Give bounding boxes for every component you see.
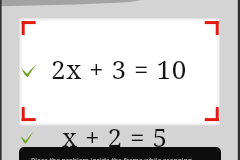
staticText: Place the problem inside the frame while… [31,156,192,160]
button[interactable]: Place the problem inside the frame while… [19,147,221,160]
staticText: x + 2 = 5 [62,119,168,154]
staticText: 2x + 3 = 10 [51,51,187,86]
